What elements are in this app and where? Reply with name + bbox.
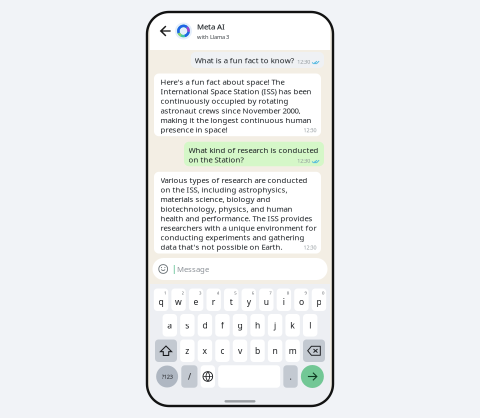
staticText: 12:30 xyxy=(303,244,316,251)
staticText: d xyxy=(202,319,207,331)
staticText: | xyxy=(172,264,176,274)
button[interactable]: g xyxy=(233,314,247,336)
staticText: h xyxy=(255,319,260,331)
staticText: z xyxy=(185,345,189,356)
staticText: 4 xyxy=(217,290,219,296)
staticText: 2 xyxy=(182,290,184,296)
staticText: y xyxy=(247,296,251,307)
button[interactable]: 6 xyxy=(242,288,256,311)
button[interactable]: 7 xyxy=(259,288,273,311)
button[interactable]: m xyxy=(285,339,300,362)
staticText: / xyxy=(188,371,191,382)
staticText: a xyxy=(167,319,172,331)
staticText: 8 xyxy=(287,290,289,296)
button[interactable]: x xyxy=(198,339,212,362)
button[interactable]: h xyxy=(250,314,265,336)
button[interactable]: l xyxy=(303,314,317,336)
button[interactable]: Backspace xyxy=(303,339,325,362)
button[interactable]: f xyxy=(215,314,230,336)
button[interactable]: 4 xyxy=(206,288,221,311)
button[interactable]: b xyxy=(250,339,265,362)
staticText: ?123 xyxy=(162,373,173,380)
staticText: 12:30 xyxy=(303,126,316,134)
button[interactable]: v xyxy=(233,339,247,362)
staticText: w xyxy=(175,296,182,307)
staticText: f xyxy=(221,319,224,331)
staticText: i xyxy=(283,296,285,307)
button[interactable]: z xyxy=(180,339,195,362)
staticText: What kind of research is conducted on th… xyxy=(188,145,318,165)
staticText: . xyxy=(289,371,291,382)
staticText: b xyxy=(255,345,260,356)
button[interactable]: k xyxy=(285,314,300,336)
staticText: g xyxy=(237,319,242,331)
staticText: 6 xyxy=(252,290,254,296)
button[interactable]: n xyxy=(268,339,282,362)
button[interactable]: | xyxy=(152,258,327,280)
button[interactable]: 1 xyxy=(154,288,168,311)
button[interactable]: Shift xyxy=(155,339,177,362)
staticText: n xyxy=(273,345,278,356)
staticText: 9 xyxy=(304,290,306,296)
staticText: c xyxy=(220,345,224,356)
staticText: What is a fun fact to know? xyxy=(195,55,294,65)
staticText: v xyxy=(238,345,242,356)
button[interactable]: 5 xyxy=(224,288,238,311)
button[interactable]: / xyxy=(181,365,197,388)
staticText: q xyxy=(158,296,163,307)
staticText: 0 xyxy=(322,290,324,296)
staticText: Meta AI xyxy=(197,21,225,32)
button[interactable]: 8 xyxy=(277,288,291,311)
button[interactable]: s xyxy=(180,314,195,336)
button[interactable]: 0 xyxy=(312,288,326,311)
staticText: Here's a fun fact about space! The Inter… xyxy=(160,76,311,135)
button[interactable]: Back xyxy=(155,14,175,48)
staticText: j xyxy=(274,319,276,331)
staticText: 1 xyxy=(164,290,166,296)
staticText: Various types of research are conducted … xyxy=(160,175,316,252)
button[interactable]: d xyxy=(198,314,212,336)
button[interactable]: j xyxy=(268,314,282,336)
staticText: 3 xyxy=(199,290,201,296)
staticText: t xyxy=(230,296,233,307)
staticText: l xyxy=(309,319,311,331)
staticText: u xyxy=(264,296,269,307)
staticText: o xyxy=(299,296,304,307)
staticText: s xyxy=(185,319,189,331)
staticText: k xyxy=(290,319,295,331)
button[interactable]: Send xyxy=(301,365,324,388)
staticText: m xyxy=(289,345,297,356)
staticText: p xyxy=(316,296,321,307)
button[interactable]: a xyxy=(163,314,177,336)
staticText: Message xyxy=(177,264,209,274)
staticText: 7 xyxy=(269,290,271,296)
button[interactable]: 9 xyxy=(294,288,309,311)
staticText: 5 xyxy=(234,290,236,296)
staticText: r xyxy=(212,296,216,307)
staticText: with Llama 3 xyxy=(197,33,229,41)
button[interactable]: 2 xyxy=(171,288,186,311)
button[interactable]: Change keyboard xyxy=(201,365,215,388)
staticText: e xyxy=(194,296,199,307)
staticText: x xyxy=(202,345,207,356)
staticText: 12:30 xyxy=(297,157,310,164)
button[interactable]: . xyxy=(283,365,298,388)
button[interactable]: 3 xyxy=(189,288,203,311)
button[interactable]: c xyxy=(215,339,230,362)
button[interactable]: ?123 xyxy=(156,365,178,387)
staticText: 12:30 xyxy=(297,58,310,65)
